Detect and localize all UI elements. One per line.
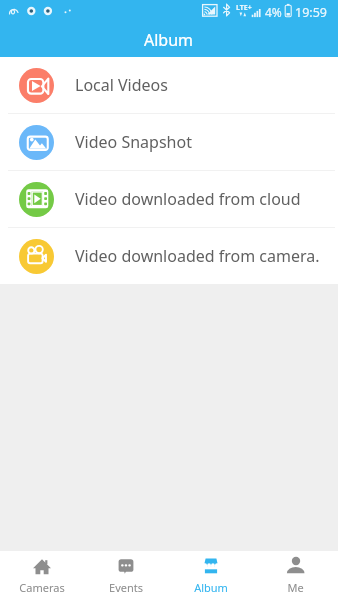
staticText: LTE+ (236, 3, 252, 13)
button[interactable]: Video downloaded from camera. (0, 228, 338, 284)
button[interactable]: Video downloaded from cloud (0, 171, 338, 227)
staticText: Video downloaded from cloud (75, 188, 301, 210)
staticText: 19:59 (295, 4, 327, 21)
button[interactable]: Me (253, 551, 338, 600)
staticText: Cameras (19, 580, 65, 595)
staticText: Events (109, 580, 143, 595)
button[interactable]: Album (168, 551, 253, 600)
staticText: Video Snapshot (75, 131, 192, 153)
button[interactable]: Events (84, 551, 168, 600)
button[interactable]: Local Videos (0, 57, 338, 113)
staticText: Video downloaded from camera. (75, 245, 320, 267)
staticText: 4% (265, 4, 282, 20)
staticText: Album (144, 29, 194, 51)
button[interactable]: Cameras (0, 551, 84, 600)
staticText: Album (194, 580, 228, 595)
staticText: Me (287, 580, 304, 595)
staticText: Local Videos (75, 74, 168, 96)
button[interactable]: Video Snapshot (0, 114, 338, 170)
